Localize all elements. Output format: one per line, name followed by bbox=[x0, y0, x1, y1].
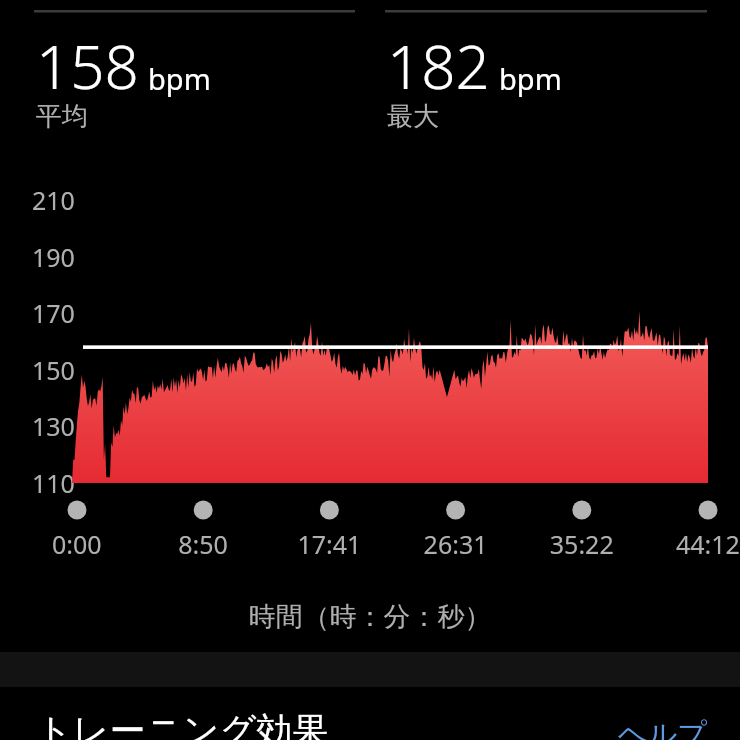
button[interactable]: Heart rate chart bbox=[0, 0, 740, 740]
